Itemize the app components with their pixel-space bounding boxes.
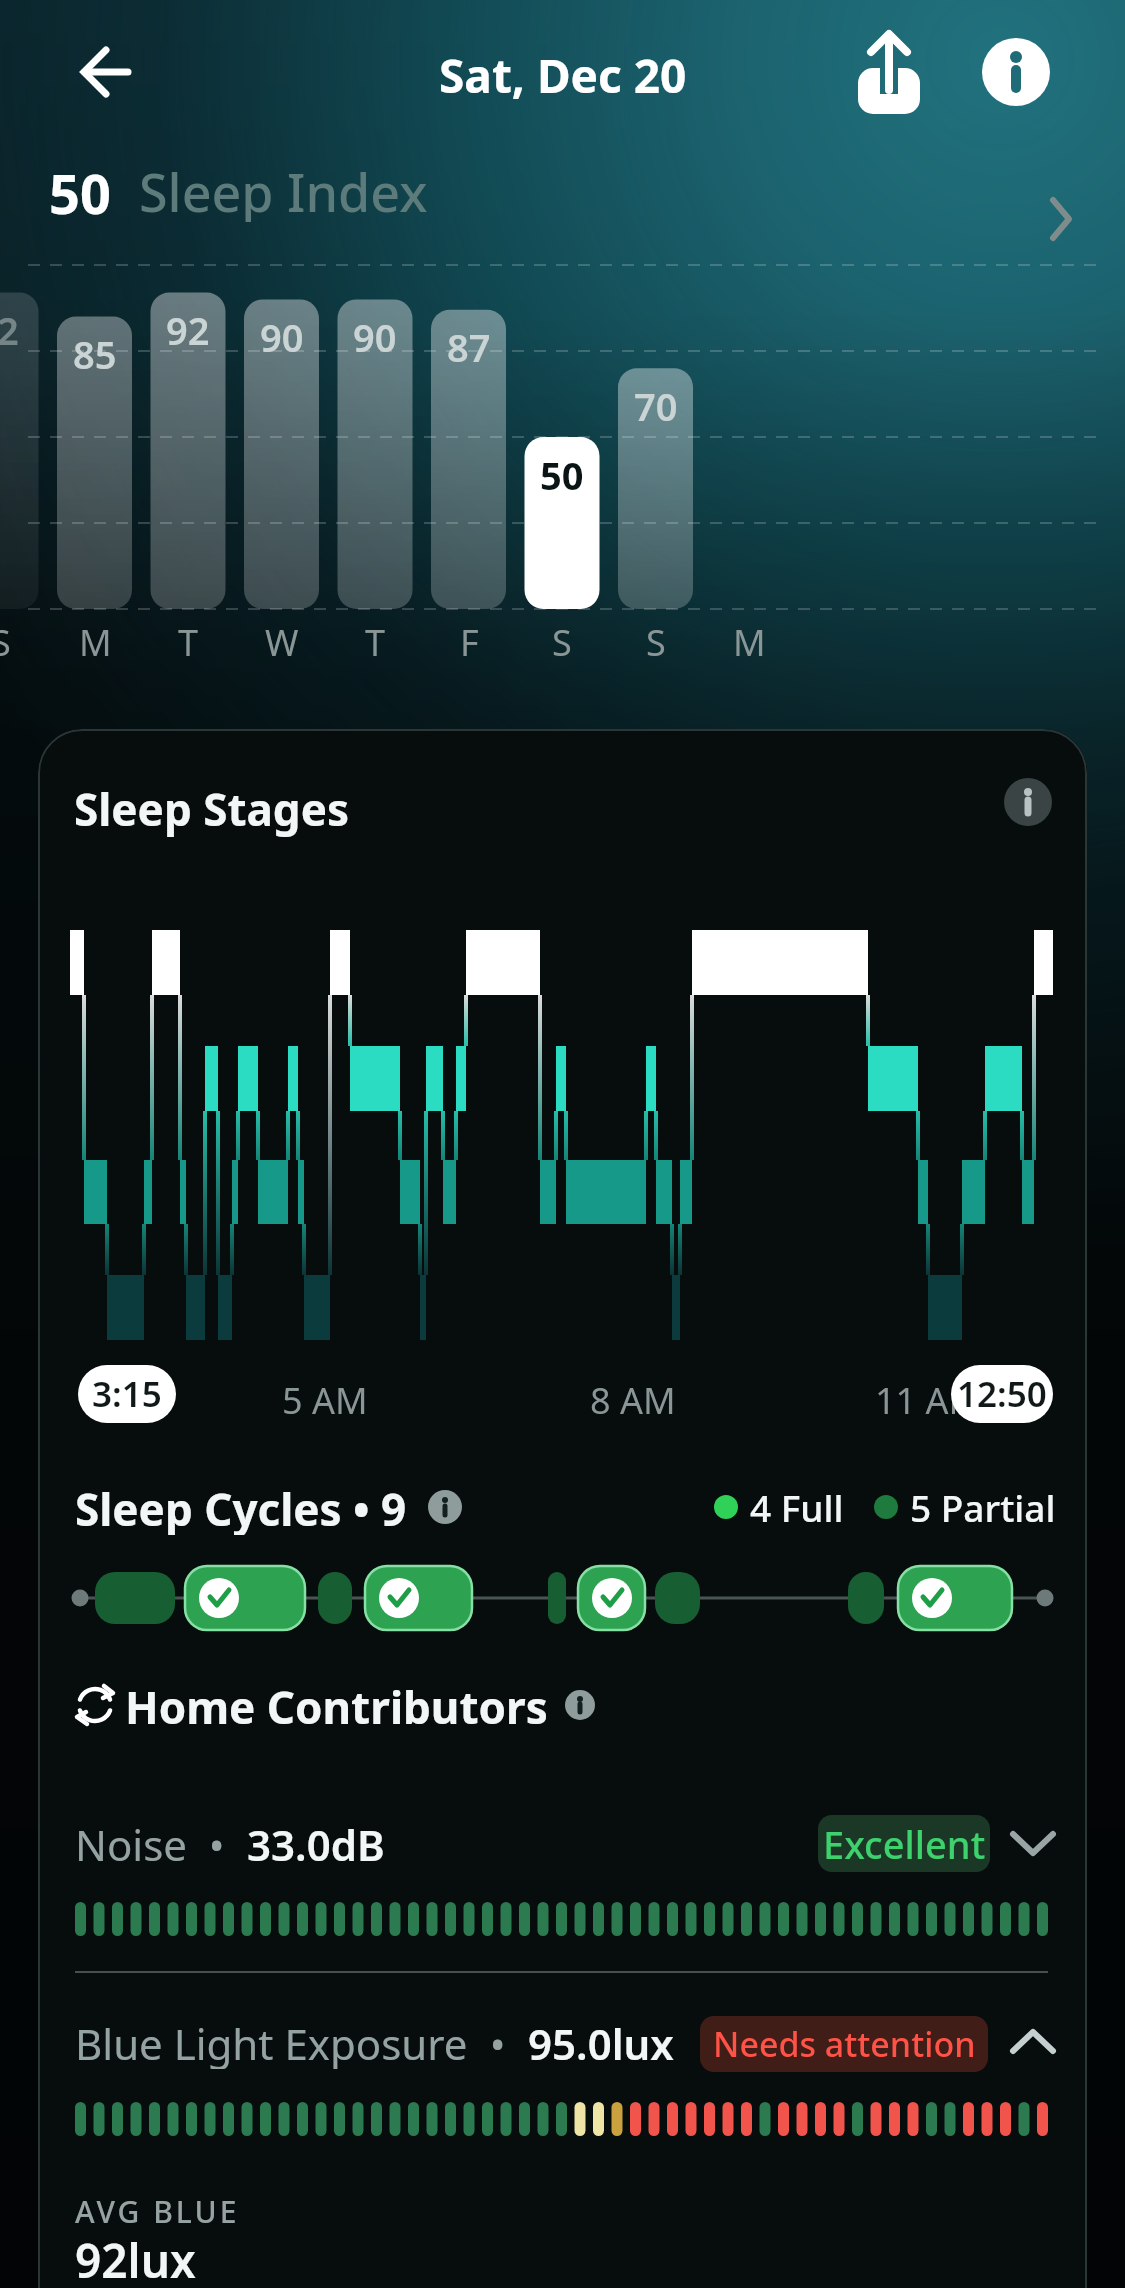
staticText: •: [468, 2015, 528, 2069]
staticText: 33.0dB: [247, 1816, 385, 1870]
staticText: 8 AM: [590, 1376, 676, 1425]
staticText: 5 AM: [282, 1376, 368, 1425]
staticText: 90: [260, 311, 304, 363]
button[interactable]: 50: [49, 156, 428, 222]
button[interactable]: Noise: [75, 1816, 385, 1870]
button[interactable]: Blue Light Exposure: [75, 2015, 674, 2069]
staticText: Excellent: [823, 1818, 986, 1870]
staticText: 85: [73, 328, 117, 380]
staticText: M: [733, 618, 766, 667]
staticText: 92: [166, 304, 210, 356]
staticText: 70: [634, 380, 678, 432]
staticText: Sat, Dec 20: [439, 44, 687, 107]
button[interactable]: [852, 28, 928, 116]
staticText: Noise: [75, 1816, 187, 1870]
staticText: T: [365, 618, 386, 667]
staticText: Sleep Cycles • 9: [75, 1479, 407, 1535]
button[interactable]: [70, 36, 142, 108]
staticText: 95.0lux: [528, 2015, 674, 2069]
staticText: T: [178, 618, 199, 667]
staticText: 2: [0, 304, 19, 356]
button[interactable]: [982, 38, 1050, 106]
button[interactable]: [38, 1559, 1087, 1639]
button[interactable]: 3:15: [78, 1365, 176, 1423]
staticText: Sleep Stages: [74, 779, 349, 839]
staticText: AVG BLUE: [75, 2191, 240, 2232]
staticText: 50: [540, 449, 584, 501]
staticText: •: [187, 1816, 247, 1870]
staticText: Needs attention: [713, 2021, 976, 2067]
staticText: 3:15: [92, 1370, 162, 1418]
staticText: W: [265, 618, 299, 667]
staticText: 92lux: [75, 2229, 196, 2288]
staticText: 90: [353, 311, 397, 363]
staticText: S: [552, 618, 572, 667]
staticText: S: [646, 618, 666, 667]
staticText: F: [460, 618, 479, 667]
staticText: 87: [447, 321, 491, 373]
staticText: M: [79, 618, 112, 667]
staticText: Home Contributors: [125, 1677, 548, 1733]
staticText: 4 Full: [750, 1482, 844, 1532]
button[interactable]: [1004, 778, 1052, 826]
staticText: 5 Partial: [910, 1482, 1056, 1532]
staticText: Sleep Index: [139, 156, 428, 222]
button[interactable]: 12:50: [951, 1365, 1053, 1423]
staticText: 11 AM: [875, 1376, 982, 1425]
staticText: 12:50: [957, 1370, 1047, 1418]
staticText: 50: [49, 156, 111, 222]
staticText: S: [0, 618, 11, 667]
staticText: Blue Light Exposure: [75, 2015, 468, 2069]
